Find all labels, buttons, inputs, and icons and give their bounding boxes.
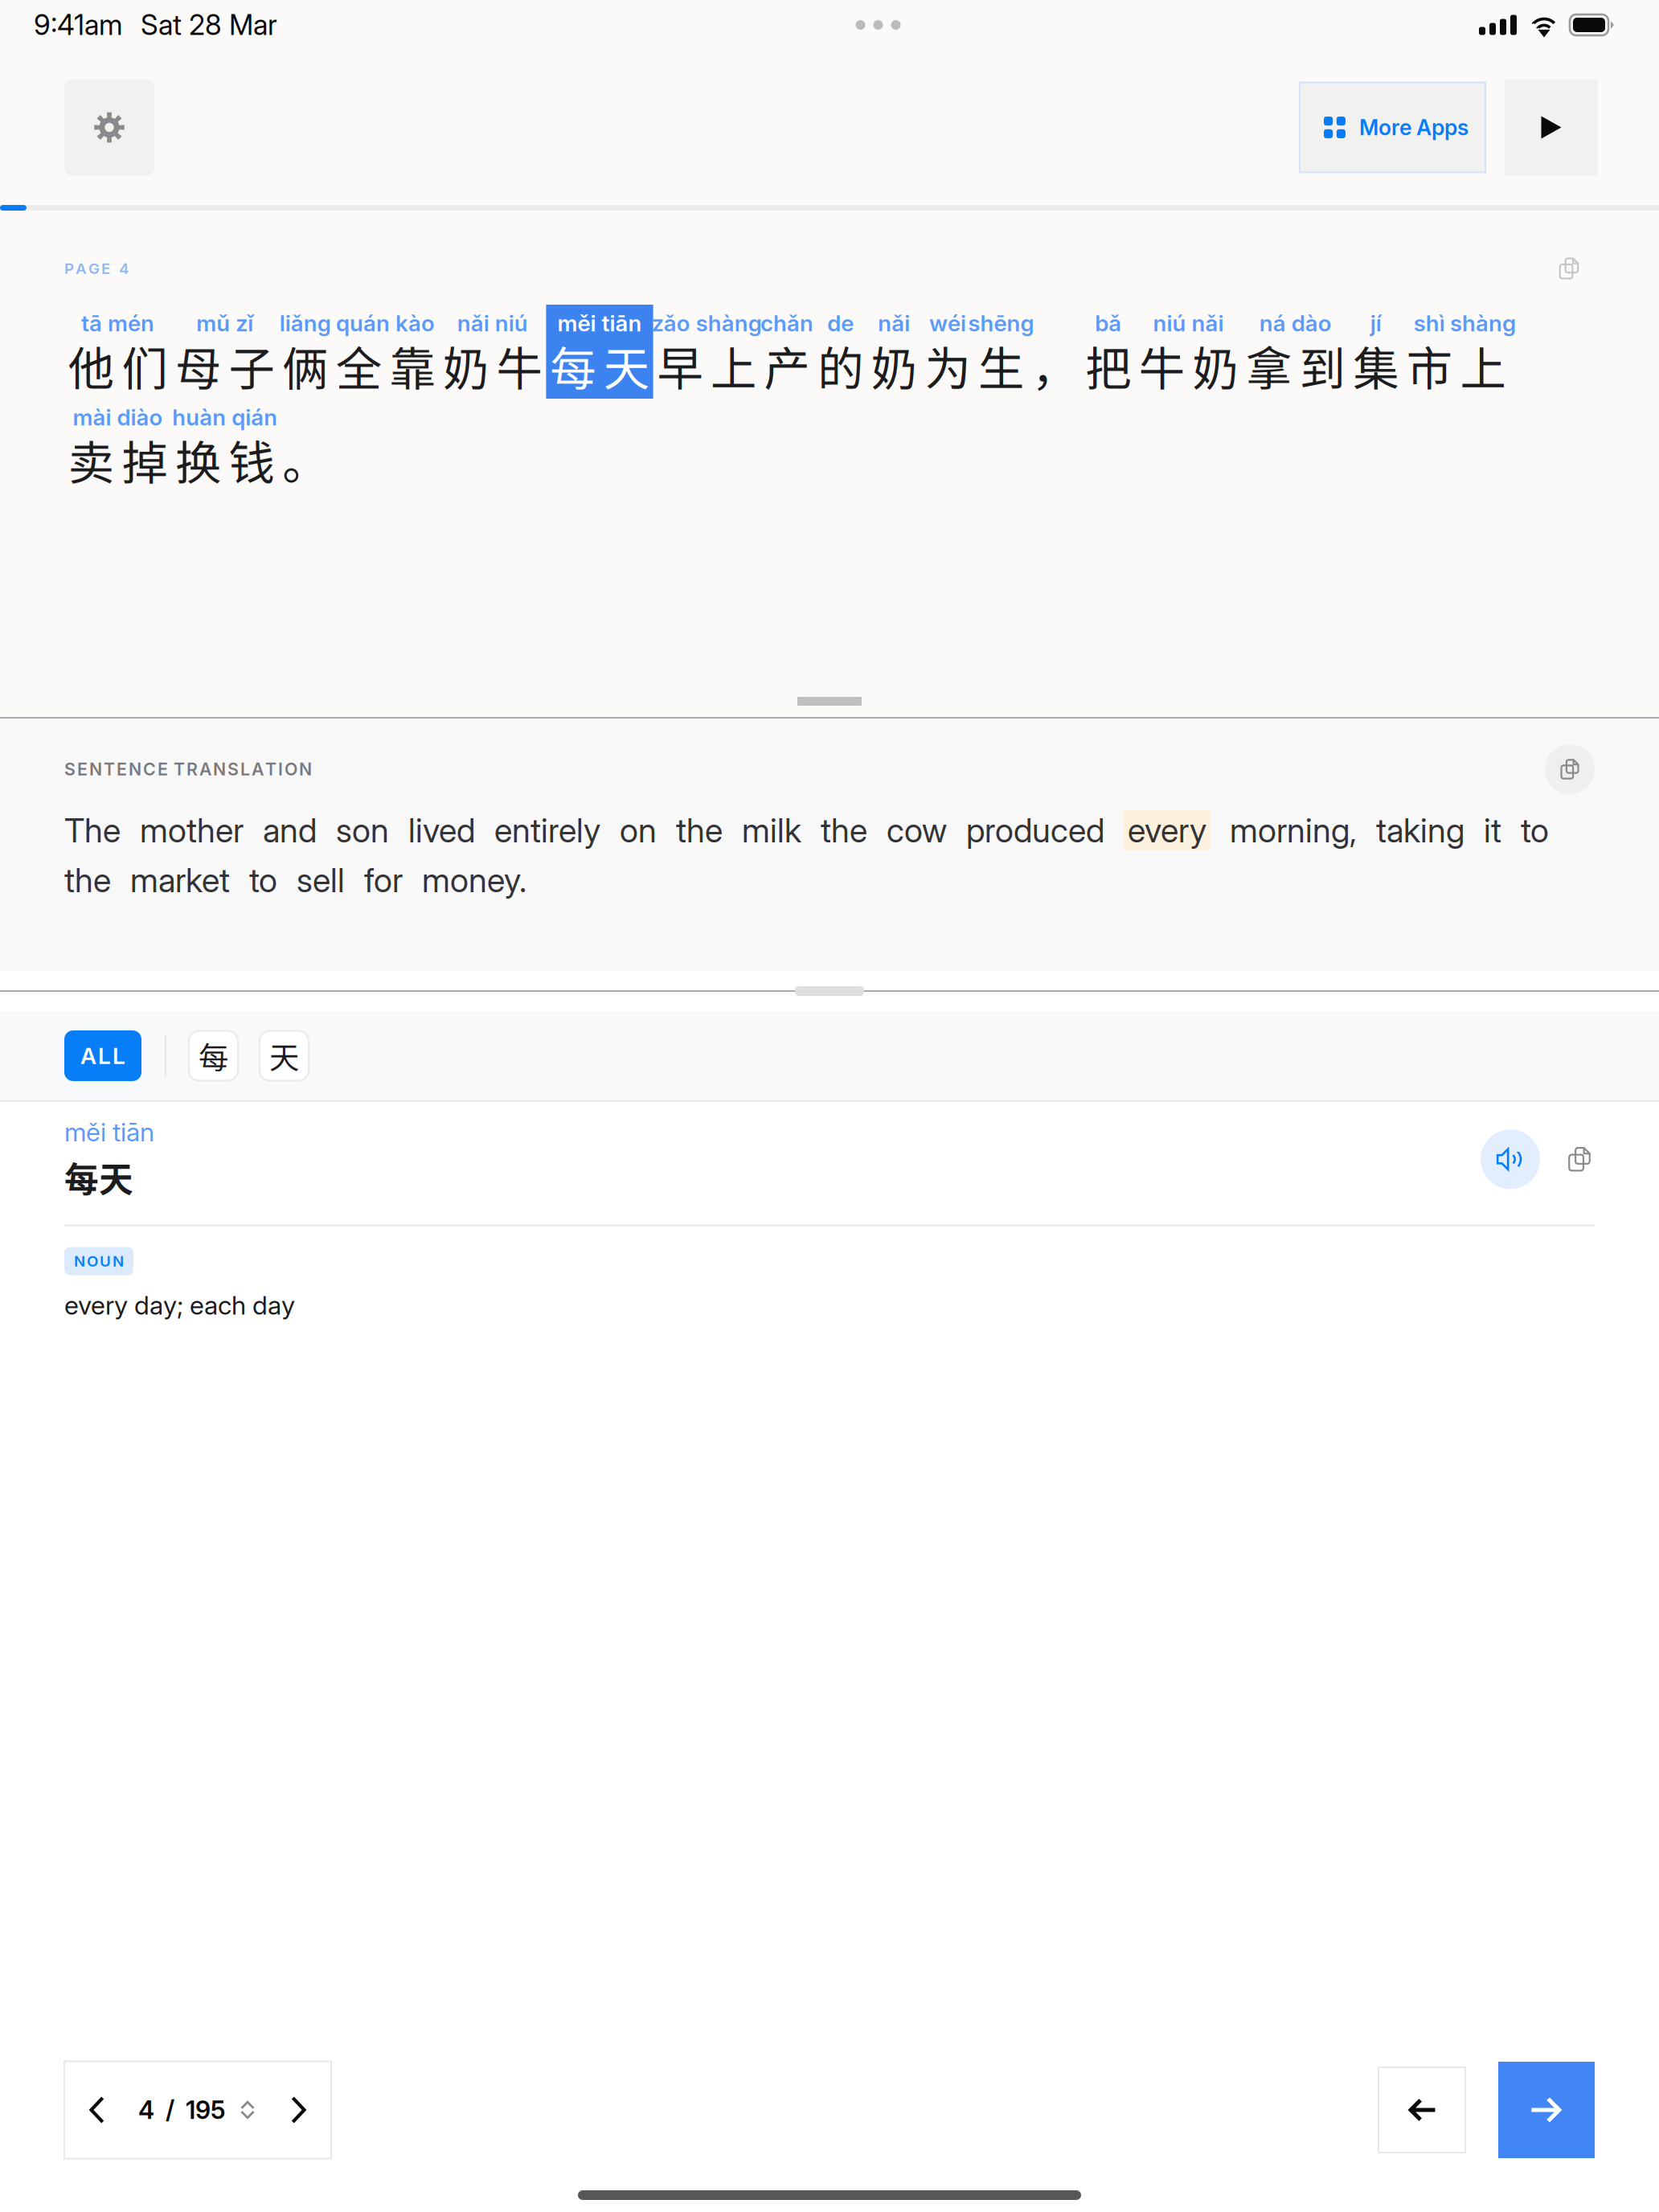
- button[interactable]: Settings: [64, 79, 154, 176]
- staticText: the: [676, 810, 723, 850]
- staticText: the: [64, 860, 111, 900]
- staticText: 牛奶: [1139, 332, 1238, 399]
- staticText: every day; each day: [64, 1290, 295, 1321]
- staticText: nǎi: [878, 310, 910, 337]
- staticText: on: [620, 810, 657, 850]
- staticText: 。: [282, 426, 328, 493]
- staticText: wéi: [929, 310, 966, 337]
- staticText: S E N T E N C E T R A N S L A T I O N: [64, 759, 312, 780]
- staticText: shàng: [1450, 310, 1516, 337]
- staticText: 天: [269, 1034, 299, 1078]
- staticText: entirely: [494, 810, 600, 850]
- staticText: the: [821, 810, 867, 850]
- button[interactable]: Choose page: [233, 2086, 262, 2134]
- staticText: 奶牛: [443, 332, 542, 399]
- staticText: and: [263, 810, 317, 850]
- button[interactable]: Copy sentence: [1546, 246, 1591, 291]
- staticText: for: [364, 860, 403, 900]
- staticText: shì: [1414, 310, 1445, 337]
- staticText: The: [64, 810, 121, 850]
- staticText: to: [1521, 810, 1549, 850]
- staticText: lived: [408, 810, 475, 850]
- staticText: niú nǎi: [1153, 310, 1224, 337]
- button[interactable]: Next page: [275, 2074, 322, 2146]
- staticText: mother: [140, 810, 244, 850]
- staticText: 母子: [175, 332, 275, 399]
- staticText: shēng: [968, 310, 1034, 337]
- button[interactable]: Previous page: [74, 2074, 121, 2146]
- button[interactable]: Play: [1505, 79, 1598, 176]
- staticText: 生: [978, 332, 1024, 399]
- staticText: market: [130, 860, 230, 900]
- staticText: 4 / 195: [138, 2095, 225, 2125]
- staticText: 拿到: [1246, 332, 1345, 399]
- staticText: ，: [1032, 332, 1078, 399]
- staticText: 每天: [550, 332, 649, 399]
- button[interactable]: Copy translation: [1545, 744, 1595, 794]
- staticText: měi tiān: [557, 310, 642, 337]
- staticText: 市: [1406, 332, 1452, 399]
- staticText: huàn qián: [172, 404, 278, 431]
- staticText: 9:41am: [34, 8, 123, 42]
- staticText: 每天: [64, 1152, 133, 1202]
- staticText: jí: [1370, 310, 1381, 337]
- staticText: nǎi niú: [457, 310, 528, 337]
- staticText: 每: [199, 1034, 228, 1078]
- staticText: chǎn: [760, 310, 814, 337]
- button[interactable]: A L L: [64, 1030, 141, 1081]
- staticText: měi tiān: [64, 1116, 154, 1148]
- staticText: 把: [1085, 332, 1131, 399]
- staticText: milk: [742, 810, 801, 850]
- staticText: morning,: [1230, 810, 1357, 850]
- staticText: ná dào: [1259, 310, 1332, 337]
- button[interactable]: More Apps: [1300, 82, 1485, 172]
- staticText: taking: [1376, 810, 1464, 850]
- staticText: P A G E 4: [64, 259, 129, 278]
- staticText: to: [249, 860, 277, 900]
- staticText: mài diào: [73, 404, 163, 431]
- button[interactable]: 每: [189, 1031, 238, 1081]
- staticText: 上: [1460, 332, 1506, 399]
- staticText: sell: [297, 860, 345, 900]
- button[interactable]: Copy word: [1556, 1136, 1603, 1183]
- staticText: it: [1484, 810, 1501, 850]
- staticText: liǎng: [279, 310, 331, 337]
- button[interactable]: Back: [1378, 2067, 1465, 2153]
- staticText: son: [336, 810, 389, 850]
- button[interactable]: Play pronunciation: [1481, 1130, 1540, 1189]
- button[interactable]: 天: [260, 1031, 309, 1081]
- staticText: More Apps: [1359, 114, 1469, 140]
- staticText: tā mén: [81, 310, 154, 337]
- staticText: zǎo shàng: [652, 310, 762, 337]
- staticText: 集: [1353, 332, 1399, 399]
- staticText: 卖掉: [68, 426, 168, 493]
- staticText: mǔ zǐ: [196, 310, 253, 337]
- staticText: 产: [764, 332, 810, 399]
- staticText: money.: [422, 860, 526, 900]
- staticText: produced: [966, 810, 1104, 850]
- staticText: bǎ: [1095, 310, 1121, 337]
- staticText: 换钱: [175, 426, 275, 493]
- staticText: 俩: [282, 332, 328, 399]
- button[interactable]: Forward: [1498, 2062, 1595, 2158]
- staticText: every: [1128, 810, 1206, 850]
- staticText: 奶: [871, 332, 917, 399]
- staticText: 早上: [657, 332, 756, 399]
- staticText: quán kào: [336, 310, 435, 337]
- staticText: cow: [887, 810, 947, 850]
- staticText: 为: [925, 332, 970, 399]
- staticText: 他们: [68, 332, 168, 399]
- staticText: A L L: [80, 1042, 125, 1069]
- staticText: 的: [818, 332, 863, 399]
- staticText: Sat 28 Mar: [141, 8, 277, 42]
- staticText: N O U N: [74, 1252, 124, 1270]
- staticText: 全靠: [336, 332, 435, 399]
- staticText: de: [827, 310, 854, 337]
